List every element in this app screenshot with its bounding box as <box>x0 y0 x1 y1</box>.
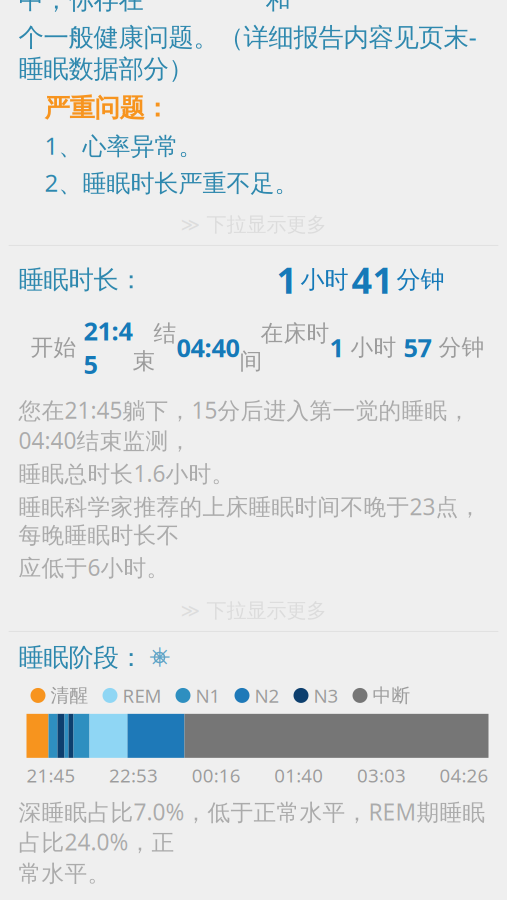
staticText: 中断 <box>372 684 410 707</box>
staticText: ≫ <box>180 600 200 621</box>
staticText: 21:45 <box>83 314 132 381</box>
staticText: 深睡眠占比7.0%，低于正常水平，REM期睡眠占比24.0%，正 <box>18 797 485 857</box>
staticText: 您在21:45躺下，15分后进入第一觉的睡眠，04:40结束监测， <box>18 395 470 455</box>
staticText: 分钟 <box>396 265 444 295</box>
staticText: 睡眠科学家推荐的上床睡眠时间不晚于23点，每晚睡眠时长不 <box>18 491 481 549</box>
staticText: N2 <box>254 683 279 708</box>
staticText: N3 <box>313 683 338 708</box>
staticText: 总评： 在昨晚的睡眠中，你存在 <box>18 0 251 16</box>
staticText: 41 <box>351 256 393 304</box>
staticText: 01:40 <box>274 763 323 788</box>
staticText: 在床时间 <box>239 319 329 375</box>
staticText: 睡眠时长： <box>18 264 143 295</box>
staticText: ≫ <box>180 214 200 235</box>
staticText: 1 <box>276 256 297 304</box>
staticText: 小时 <box>300 265 348 295</box>
staticText: 应低于6小时。 <box>18 552 169 582</box>
staticText: 个严重健康问题 和 <box>265 0 448 16</box>
staticText: 睡眠总时长1.6小时。 <box>18 458 234 488</box>
staticText: 22:53 <box>109 763 158 788</box>
staticText: REM <box>122 683 161 708</box>
staticText: 分钟 <box>431 333 484 361</box>
staticText: ✳ <box>148 642 170 673</box>
staticText: 小时 <box>343 333 403 361</box>
staticText: 57 <box>403 331 431 364</box>
staticText: 严重问题： <box>44 92 169 124</box>
staticText: 个一般健康问题。（详细报告内容见页末-睡眠数据部分） <box>18 20 476 84</box>
staticText: 1 <box>329 331 343 364</box>
staticText: 03:03 <box>357 763 406 788</box>
staticText: 开始 <box>30 333 83 361</box>
staticText: 结束 <box>132 319 176 375</box>
staticText: 04:40 <box>176 331 239 364</box>
staticText: 2、睡眠时长严重不足。 <box>44 166 298 198</box>
staticText: 常水平。 <box>18 860 110 888</box>
staticText: 下拉显示更多 <box>206 598 326 623</box>
staticText: 04:26 <box>439 763 488 788</box>
staticText: 00:16 <box>192 763 241 788</box>
staticText: N1 <box>195 683 220 708</box>
staticText: 1、心率异常。 <box>44 130 202 161</box>
staticText: 睡眠阶段： <box>18 642 143 673</box>
staticText: 21:45 <box>26 763 75 788</box>
staticText: 下拉显示更多 <box>206 212 326 237</box>
staticText: 清醒 <box>50 684 88 707</box>
